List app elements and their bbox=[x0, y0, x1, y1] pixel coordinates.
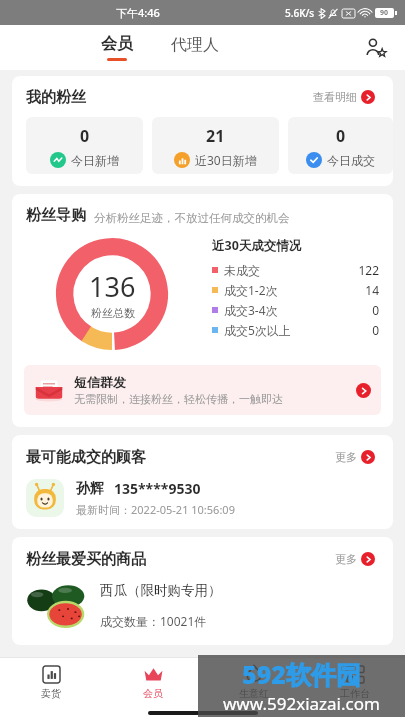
staticText: 0 bbox=[372, 322, 379, 338]
button[interactable]: 会员 bbox=[102, 658, 203, 706]
staticText: 未成交 bbox=[224, 263, 260, 278]
staticText: 粉丝导购 bbox=[26, 206, 86, 225]
button[interactable]: 生意红 bbox=[203, 658, 304, 706]
staticText: 无需限制，连接粉丝，轻松传播，一触即达 bbox=[74, 392, 283, 406]
button[interactable]: 更多 bbox=[331, 446, 379, 468]
button[interactable]: 西瓜（限时购专用） bbox=[12, 579, 393, 645]
button[interactable]: 0 bbox=[26, 117, 143, 174]
staticText: 会员 bbox=[101, 34, 133, 54]
staticText: 更多 bbox=[335, 450, 357, 464]
button[interactable]: 0 bbox=[288, 117, 393, 174]
staticText: 代理人 bbox=[171, 35, 219, 55]
staticText: 孙辉 bbox=[76, 480, 104, 498]
staticText: 会员 bbox=[143, 687, 163, 700]
staticText: 生意红 bbox=[239, 687, 269, 700]
staticText: 135****9530 bbox=[114, 479, 201, 498]
staticText: 成交3-4次 bbox=[224, 302, 278, 318]
staticText: 21 bbox=[206, 125, 225, 147]
staticText: 更多 bbox=[335, 552, 357, 566]
staticText: 592软件园 bbox=[242, 657, 361, 691]
staticText: 0 bbox=[80, 125, 90, 147]
staticText: 136 bbox=[89, 268, 136, 305]
staticText: 今日新增 bbox=[71, 153, 119, 168]
staticText: 近30天成交情况 bbox=[212, 237, 302, 254]
staticText: 粉丝总数 bbox=[91, 306, 135, 320]
staticText: 最可能成交的顾客 bbox=[26, 448, 146, 467]
staticText: 分析粉丝足迹，不放过任何成交的机会 bbox=[94, 211, 290, 225]
button[interactable]: 卖货 bbox=[0, 658, 102, 706]
button[interactable]: 更多 bbox=[331, 548, 379, 570]
staticText: 最新时间：2022-05-21 10:56:09 bbox=[76, 502, 235, 517]
staticText: 工作台 bbox=[340, 687, 370, 700]
staticText: 14 bbox=[365, 282, 379, 298]
staticText: 短信群发 bbox=[74, 374, 126, 390]
staticText: 5.6K/s bbox=[285, 6, 315, 20]
staticText: 成交数量：10021件 bbox=[100, 613, 207, 629]
staticText: 查看明细 bbox=[313, 90, 357, 104]
staticText: 西瓜（限时购专用） bbox=[100, 582, 222, 599]
button[interactable]: 短信群发 bbox=[24, 365, 381, 415]
staticText: 下午4:46 bbox=[116, 5, 160, 20]
button[interactable]: 工作台 bbox=[304, 658, 405, 706]
staticText: 卖货 bbox=[41, 687, 61, 700]
button[interactable]: 会员 bbox=[95, 30, 139, 65]
staticText: 粉丝最爱买的商品 bbox=[26, 550, 146, 569]
staticText: 0 bbox=[336, 125, 346, 147]
button[interactable]: 查看明细 bbox=[309, 86, 379, 108]
button[interactable]: 21 bbox=[152, 117, 279, 174]
button[interactable]: 孙辉 bbox=[12, 477, 393, 529]
staticText: 90 bbox=[380, 8, 389, 18]
staticText: www.592xiazai.com bbox=[223, 692, 380, 715]
button[interactable]: Add member bbox=[361, 33, 391, 63]
button[interactable]: 代理人 bbox=[165, 34, 225, 62]
staticText: 0 bbox=[372, 302, 379, 318]
staticText: 122 bbox=[358, 262, 379, 278]
staticText: 成交5次以上 bbox=[224, 322, 291, 338]
staticText: 今日成交 bbox=[327, 153, 375, 168]
staticText: 成交1-2次 bbox=[224, 282, 278, 298]
staticText: 我的粉丝 bbox=[26, 88, 86, 107]
staticText: 近30日新增 bbox=[195, 152, 257, 168]
